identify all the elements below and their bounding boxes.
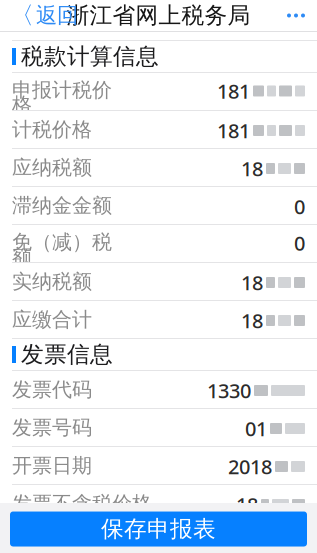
staticText: 格 [12,92,32,117]
staticText: 应纳税额 [12,155,92,180]
button[interactable]: 更多 [275,0,317,31]
button[interactable]: 〈 [0,0,88,31]
staticText: 18 [241,155,263,182]
button[interactable]: 保存申报表 [10,511,307,546]
staticText: 18 [236,491,258,518]
staticText: 2018 [228,453,272,480]
staticText: 申报计税价 [12,78,112,102]
staticText: 开票日期 [12,453,92,478]
staticText: 免（减）税 [12,230,112,254]
staticText: 实纳税额 [12,269,92,294]
staticText: 计税价格 [12,117,92,142]
staticText: 01 [245,415,267,442]
staticText: 18 [241,269,263,296]
staticText: 发票信息 [21,341,113,368]
staticText: 滞纳金金额 [12,193,112,218]
staticText: 1330 [207,377,251,404]
staticText: 18 [241,307,263,334]
staticText: 应缴合计 [12,307,92,332]
staticText: 返回 [36,2,78,29]
staticText: 0 [294,193,305,220]
staticText: 税款计算信息 [21,43,159,70]
staticText: 〈 [10,1,34,30]
staticText: 发票号码 [12,415,92,440]
staticText: 181 [217,117,250,144]
staticText: 发票代码 [12,377,92,402]
staticText: 0 [294,230,305,256]
staticText: 浙江省网上税务局 [66,2,250,29]
staticText: 发票不含税价格 [12,491,152,516]
staticText: 保存申报表 [101,515,216,543]
staticText: 181 [217,78,250,104]
staticText: 额 [12,244,32,269]
